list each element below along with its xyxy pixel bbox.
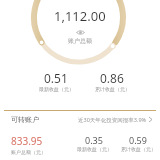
staticText: 账户总额（元）: [11, 149, 46, 155]
button[interactable]: 可转账户: [11, 115, 152, 124]
staticText: 账户总额: [68, 37, 92, 45]
staticText: 1,112.00: [54, 7, 106, 25]
button[interactable]: Toggle balance visibility: [68, 30, 92, 45]
staticText: 最新收益（元）: [39, 86, 74, 92]
staticText: 0.59: [129, 134, 147, 146]
staticText: 0.35: [85, 134, 103, 146]
staticText: 累计收益（元）: [121, 146, 156, 152]
staticText: 0.51: [44, 70, 68, 86]
staticText: 近30天年化投资回报率3.9%: [78, 116, 147, 124]
staticText: 833.95: [11, 134, 43, 148]
staticText: 累计收益（元）: [95, 86, 130, 92]
staticText: 最新收益（元）: [77, 146, 112, 152]
staticText: 0.86: [100, 70, 124, 86]
staticText: 可转账户: [11, 115, 39, 124]
